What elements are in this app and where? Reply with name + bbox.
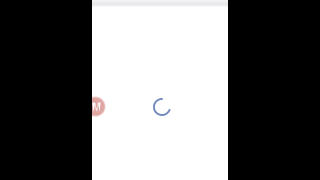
button[interactable]: Open app xyxy=(86,98,104,116)
